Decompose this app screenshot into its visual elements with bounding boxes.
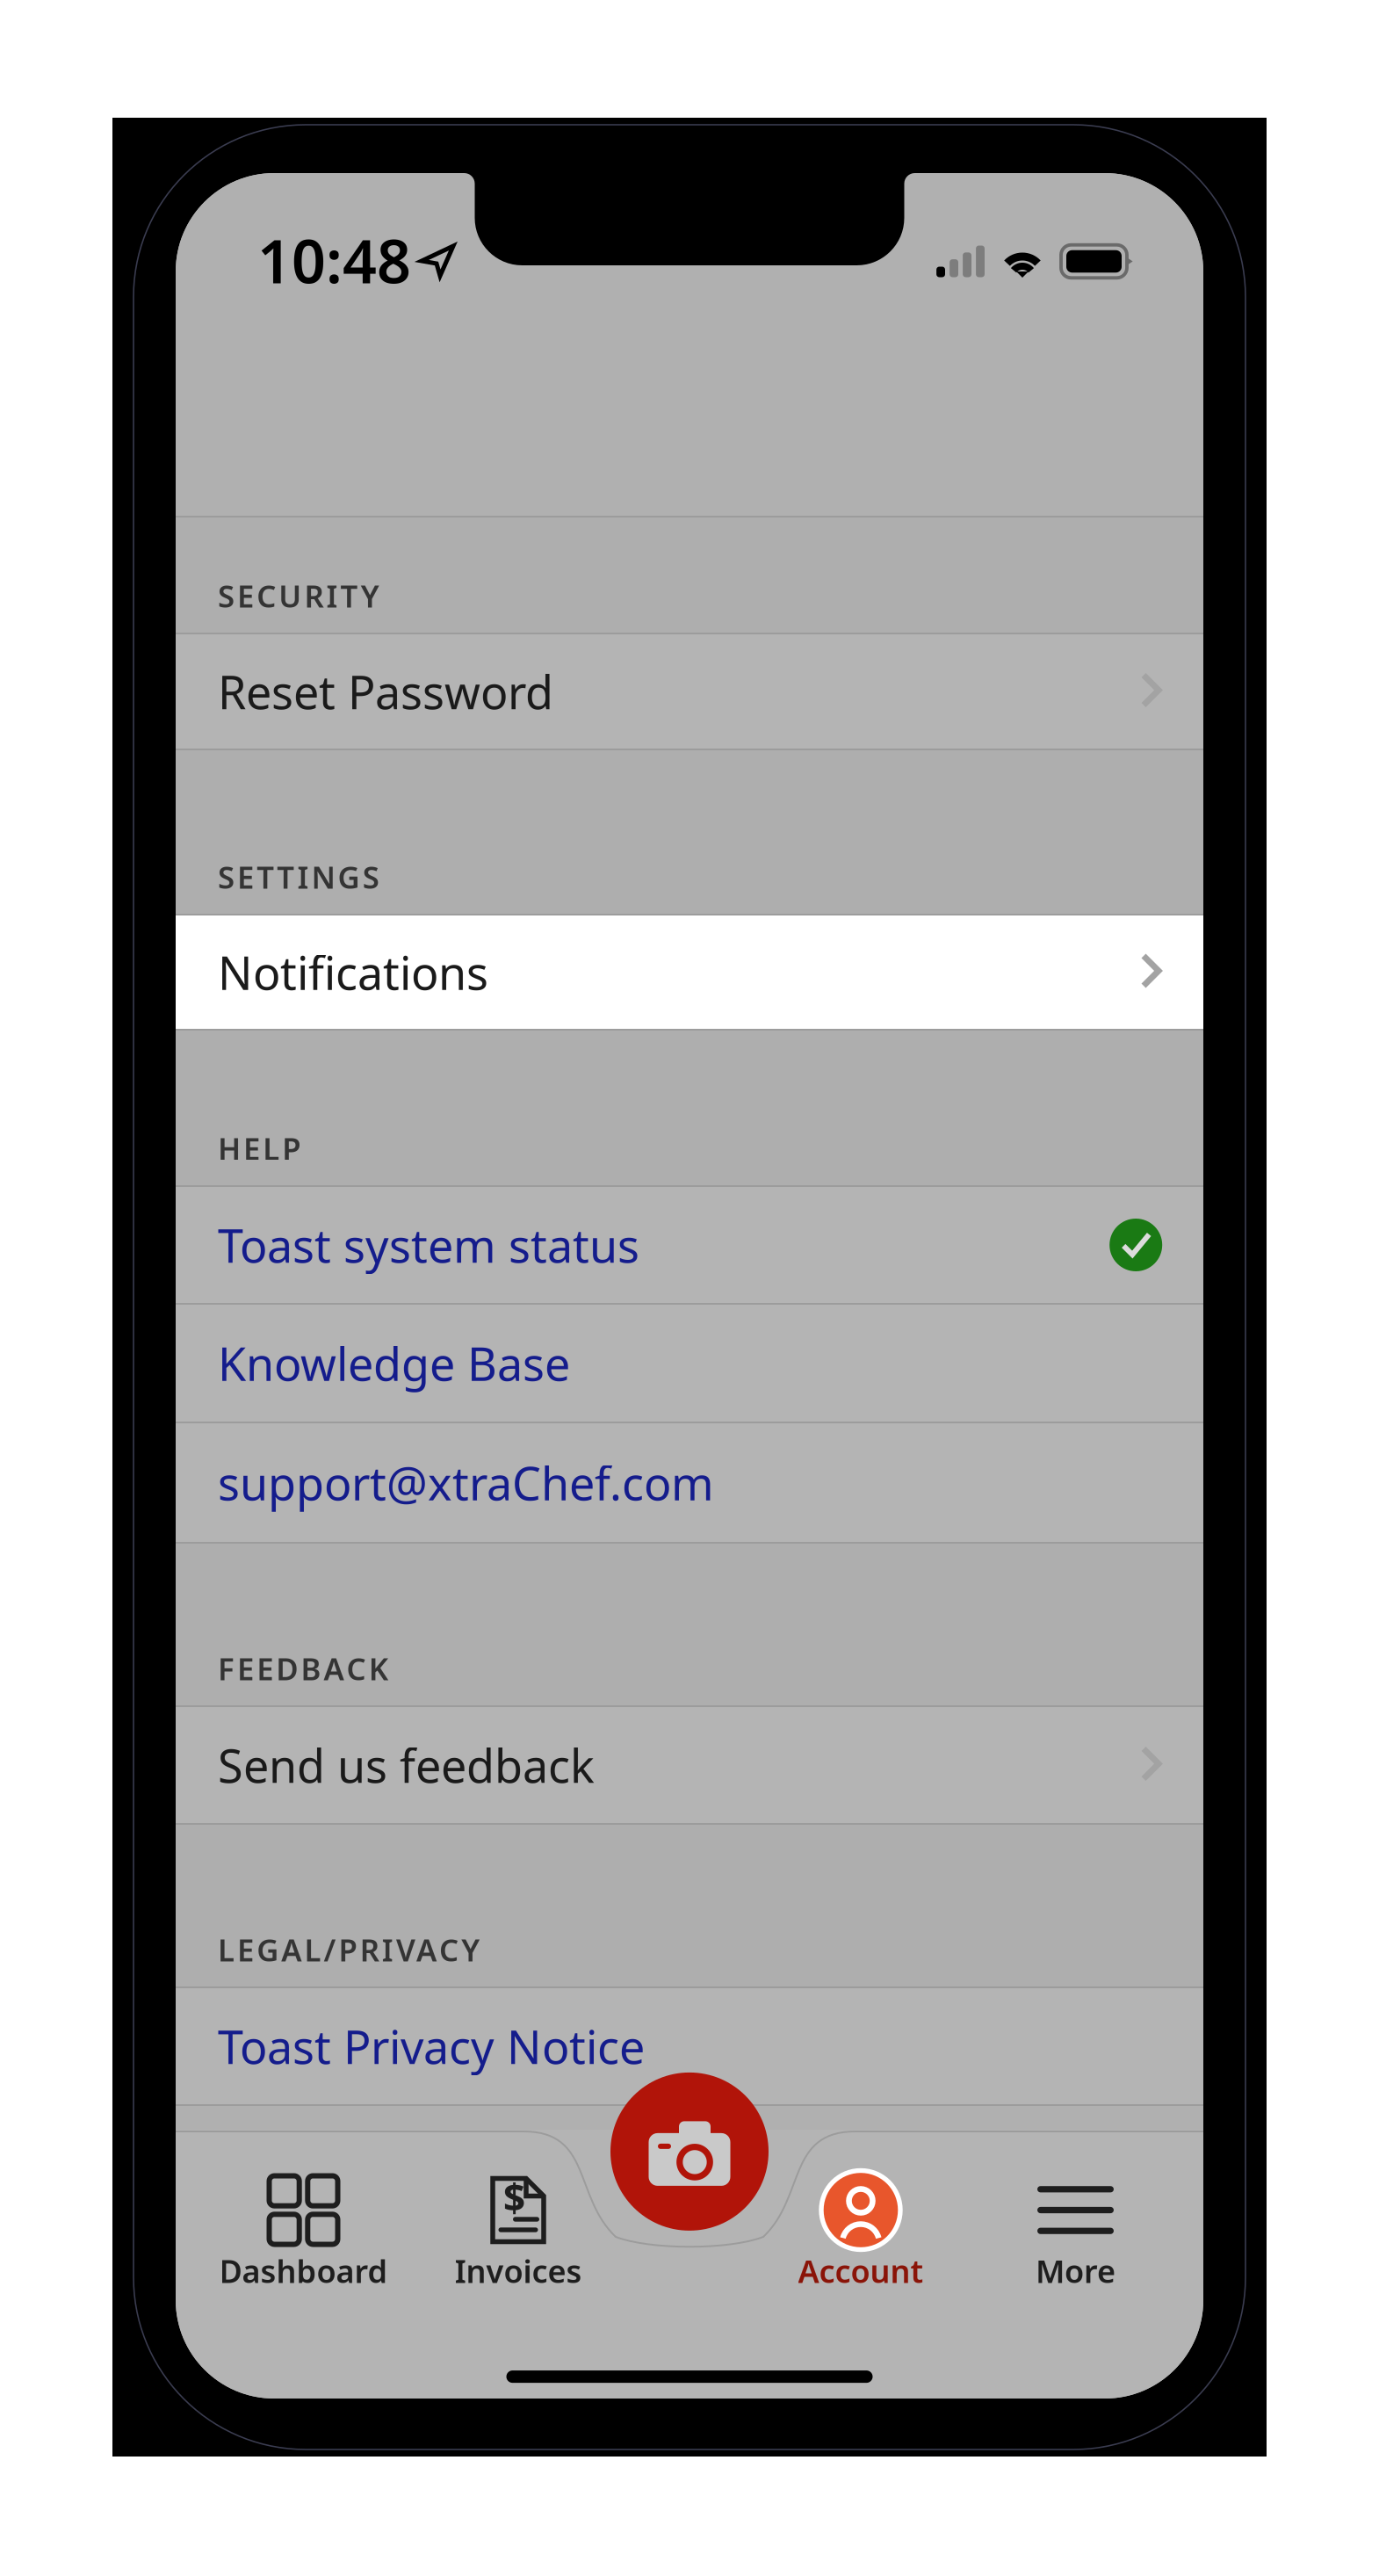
button[interactable]: Reset Password [176,634,1203,749]
button[interactable]: Dashboard [178,2176,429,2297]
staticText: Reset Password [218,661,553,722]
staticText: LEGAL/PRIVACY [218,1929,480,1970]
staticText: HELP [218,1128,301,1169]
button[interactable]: support@xtraChef.com [176,1423,1203,1542]
button[interactable]: Notifications [176,915,1203,1029]
staticText: Toast Privacy Notice [218,2016,645,2077]
button[interactable]: Account [736,2176,986,2297]
button[interactable]: Toast system status [176,1187,1203,1303]
staticText: More [1036,2250,1115,2292]
staticText: $ [503,2171,525,2223]
button[interactable]: Knowledge Base [176,1305,1203,1422]
button[interactable]: Toast Privacy Notice [176,1988,1203,2104]
staticText: Account [798,2250,924,2292]
staticText: FEEDBACK [218,1648,388,1689]
button[interactable]: Send us feedback [176,1707,1203,1823]
staticText: Toast system status [218,1215,639,1275]
staticText: SECURITY [218,575,379,616]
staticText: 10:48 [257,220,411,300]
button[interactable]: Scan receipt [610,2072,769,2231]
staticText: Invoices [455,2250,582,2292]
button[interactable]: $ [393,2176,643,2297]
staticText: Dashboard [219,2250,388,2292]
staticText: Notifications [218,942,488,1003]
button[interactable]: More [950,2176,1201,2297]
staticText: Knowledge Base [218,1333,570,1394]
staticText: SETTINGS [218,857,379,897]
staticText: Send us feedback [218,1735,595,1795]
staticText: support@xtraChef.com [218,1452,714,1513]
